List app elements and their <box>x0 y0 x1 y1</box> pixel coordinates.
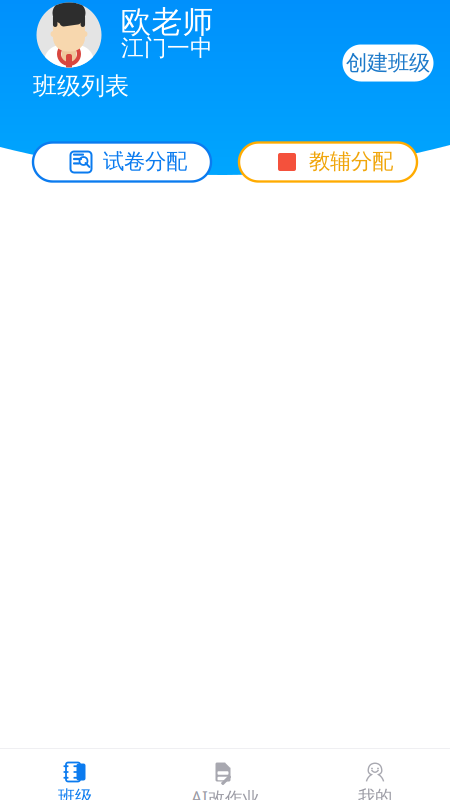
button[interactable]: 班级 <box>0 749 150 800</box>
button[interactable]: 教辅分配 <box>239 142 417 181</box>
staticText: 我的 <box>358 786 392 800</box>
staticText: 试卷分配 <box>103 148 187 175</box>
staticText: 欧老师 <box>120 3 213 41</box>
button[interactable]: 试卷分配 <box>33 142 211 181</box>
button[interactable]: AI改作业 <box>150 749 300 800</box>
staticText: 教辅分配 <box>309 148 393 175</box>
staticText: AI改作业 <box>191 786 259 800</box>
staticText: 班级 <box>58 786 92 800</box>
staticText: 江门一中 <box>121 34 213 62</box>
staticText: 班级列表 <box>33 71 129 101</box>
button[interactable]: 我的 <box>300 749 450 800</box>
button[interactable]: 创建班级 <box>342 44 433 81</box>
staticText: 创建班级 <box>346 50 430 76</box>
